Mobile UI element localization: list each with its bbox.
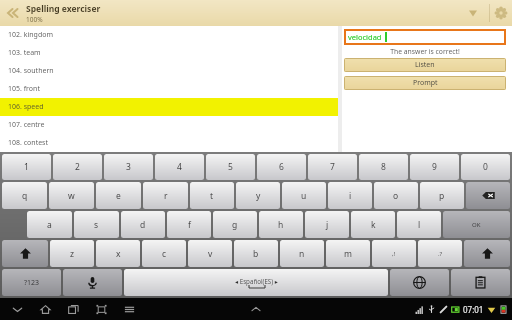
staticText: 100% [26, 15, 43, 24]
button[interactable]: ?123 [2, 269, 61, 296]
staticText: u [301, 190, 307, 202]
button[interactable]: 104. southern [0, 62, 338, 80]
staticText: ,! [392, 250, 396, 258]
button[interactable]: l [397, 211, 441, 238]
button[interactable]: Change language [390, 269, 449, 296]
staticText: j [326, 219, 329, 231]
staticText: o [393, 190, 399, 202]
button[interactable]: k [351, 211, 395, 238]
button[interactable]: g [213, 211, 257, 238]
button[interactable]: Dropdown menu [457, 0, 489, 26]
staticText: w [68, 190, 75, 202]
button[interactable]: 9 [410, 154, 459, 180]
button[interactable]: y [236, 182, 280, 209]
button[interactable]: r [143, 182, 188, 209]
staticText: The answer is correct! [344, 47, 506, 56]
button[interactable]: q [2, 182, 47, 209]
staticText: 4 [177, 161, 182, 173]
staticText: a [47, 219, 52, 231]
button[interactable]: Menu [120, 300, 138, 318]
button[interactable]: Back [0, 0, 26, 26]
staticText: velocidad [348, 32, 382, 42]
button[interactable]: j [305, 211, 349, 238]
button[interactable]: c [142, 240, 186, 267]
staticText: x [116, 248, 121, 260]
staticText: p [439, 190, 445, 202]
button[interactable]: Settings [490, 0, 512, 26]
button[interactable]: u [282, 182, 326, 209]
button[interactable]: p [420, 182, 464, 209]
staticText: 7 [330, 161, 335, 173]
button[interactable]: 5 [206, 154, 255, 180]
staticText: k [371, 219, 376, 231]
button[interactable]: 8 [359, 154, 408, 180]
button[interactable]: Backspace [466, 182, 510, 209]
button[interactable]: 108. contest [0, 134, 338, 152]
button[interactable]: h [259, 211, 303, 238]
button[interactable]: 2 [53, 154, 102, 180]
button[interactable]: Listen [344, 58, 506, 72]
button[interactable]: a [27, 211, 72, 238]
staticText: Spelling exerciser [26, 3, 101, 15]
button[interactable]: ◂ Español(ES) ▸ [124, 269, 388, 296]
staticText: 107. centre [8, 120, 45, 130]
button[interactable]: n [280, 240, 324, 267]
button[interactable]: 0 [461, 154, 510, 180]
button[interactable]: ,! [372, 240, 416, 267]
button[interactable]: w [49, 182, 94, 209]
button[interactable]: x [96, 240, 140, 267]
staticText: OK [472, 221, 481, 229]
staticText: c [162, 248, 167, 260]
button[interactable]: 107. centre [0, 116, 338, 134]
button[interactable]: z [50, 240, 94, 267]
staticText: e [116, 190, 121, 202]
staticText: s [94, 219, 99, 231]
button[interactable]: Back [8, 300, 26, 318]
button[interactable]: t [190, 182, 234, 209]
button[interactable]: 3 [104, 154, 153, 180]
button[interactable]: o [374, 182, 418, 209]
staticText: 07:01 [463, 304, 484, 315]
staticText: b [253, 248, 259, 260]
staticText: q [22, 190, 28, 202]
button[interactable]: 6 [257, 154, 306, 180]
staticText: 103. team [8, 48, 41, 58]
staticText: Prompt [413, 78, 438, 88]
button[interactable]: Prompt [344, 76, 506, 90]
button[interactable]: Recent apps [64, 300, 82, 318]
staticText: g [232, 219, 238, 231]
button[interactable]: Clipboard [451, 269, 510, 296]
button[interactable]: Home [36, 300, 54, 318]
button[interactable]: e [96, 182, 141, 209]
staticText: 5 [228, 161, 233, 173]
button[interactable]: b [234, 240, 278, 267]
button[interactable]: m [326, 240, 370, 267]
button[interactable]: 103. team [0, 44, 338, 62]
staticText: ?123 [24, 278, 40, 288]
staticText: 2 [75, 161, 80, 173]
button[interactable]: .? [418, 240, 462, 267]
button[interactable]: Screenshot [92, 300, 110, 318]
button[interactable]: Shift [464, 240, 510, 267]
button[interactable]: s [74, 211, 119, 238]
button[interactable]: Expand [248, 301, 264, 317]
staticText: 106. speed [8, 102, 44, 112]
button[interactable]: 106. speed [0, 98, 338, 116]
button[interactable]: 7 [308, 154, 357, 180]
button[interactable]: Voice input [63, 269, 122, 296]
button[interactable]: 102. kingdom [0, 26, 338, 44]
staticText: l [418, 219, 421, 231]
button[interactable]: d [121, 211, 165, 238]
button[interactable]: velocidad [344, 29, 506, 45]
button[interactable]: 105. front [0, 80, 338, 98]
staticText: i [349, 190, 352, 202]
button[interactable]: Shift [2, 240, 48, 267]
button[interactable]: f [167, 211, 211, 238]
button[interactable]: 1 [2, 154, 51, 180]
button[interactable]: OK [443, 211, 510, 238]
button[interactable]: v [188, 240, 232, 267]
button[interactable]: i [328, 182, 372, 209]
button[interactable]: 4 [155, 154, 204, 180]
staticText: 108. contest [8, 138, 48, 148]
staticText: 0 [483, 161, 488, 173]
